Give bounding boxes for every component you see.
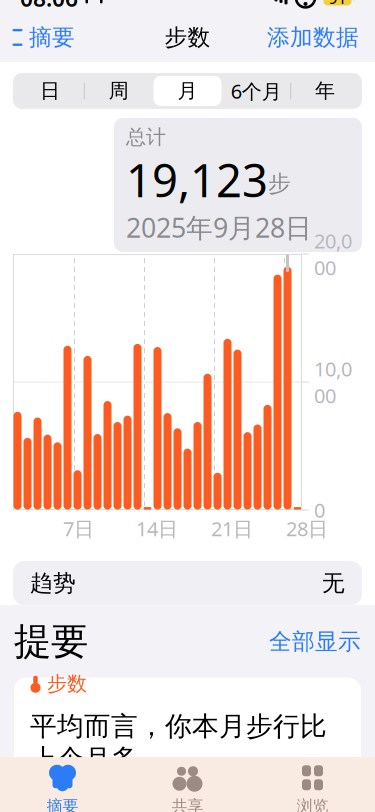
button[interactable]: 添加数据 bbox=[267, 15, 375, 59]
button[interactable]: 年 bbox=[291, 76, 359, 106]
staticText: 91 bbox=[328, 0, 346, 8]
button[interactable]: 趋势 bbox=[13, 561, 362, 605]
staticText: 6个月 bbox=[231, 78, 282, 104]
button[interactable]: 月 bbox=[154, 76, 221, 106]
staticText: 10,000 bbox=[314, 355, 352, 409]
staticText: 总计 bbox=[126, 125, 166, 149]
staticText: 21日 bbox=[211, 515, 253, 542]
staticText: 日 bbox=[40, 79, 60, 103]
staticText: 周 bbox=[109, 79, 129, 103]
button[interactable]: 日 bbox=[16, 76, 84, 106]
staticText: 平均而言，你本月步行比上个月多。 bbox=[30, 710, 327, 775]
button[interactable]: 6个月 bbox=[222, 76, 290, 106]
staticText: 添加数据 bbox=[267, 23, 359, 51]
button[interactable]: 共享 bbox=[125, 765, 250, 812]
button[interactable]: 全部显示 bbox=[269, 628, 361, 655]
staticText: 0 bbox=[314, 497, 325, 523]
staticText: 摘要 bbox=[46, 796, 78, 812]
staticText: 28日 bbox=[286, 515, 328, 542]
staticText: 提要 bbox=[14, 619, 88, 665]
staticText: 年 bbox=[315, 79, 335, 103]
staticText: 步数 bbox=[47, 671, 87, 696]
staticText: 20,000 bbox=[314, 227, 352, 281]
button[interactable]: 摘要 bbox=[0, 15, 75, 59]
staticText: 无 bbox=[322, 569, 345, 597]
staticText: 2025年9月28日 bbox=[126, 210, 312, 245]
staticText: 浏览 bbox=[296, 796, 328, 812]
staticText: 7日 bbox=[63, 515, 94, 542]
staticText: 19,123 bbox=[126, 149, 268, 210]
staticText: 08:06 bbox=[20, 0, 78, 13]
staticText: 步 bbox=[268, 170, 291, 197]
staticText: 步数 bbox=[164, 23, 210, 51]
staticText: 14日 bbox=[136, 515, 178, 542]
button[interactable]: 周 bbox=[85, 76, 153, 106]
staticText: 趋势 bbox=[30, 569, 76, 597]
button[interactable]: 步数 bbox=[14, 677, 361, 771]
button[interactable]: 摘要 bbox=[0, 765, 125, 812]
staticText: 全部显示 bbox=[269, 628, 361, 655]
staticText: 共享 bbox=[171, 796, 203, 812]
staticText: 摘要 bbox=[29, 23, 75, 51]
staticText: 月 bbox=[177, 79, 197, 103]
button[interactable]: 浏览 bbox=[250, 765, 375, 812]
